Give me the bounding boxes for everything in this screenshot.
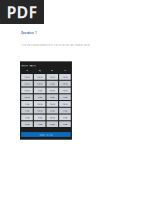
staticText: F bbox=[64, 68, 65, 72]
staticText: true bbox=[63, 123, 67, 126]
staticText: true bbox=[50, 82, 54, 85]
staticText: false bbox=[50, 102, 55, 105]
staticText: false bbox=[50, 116, 55, 119]
staticText: true bbox=[38, 123, 42, 126]
staticText: false bbox=[62, 75, 67, 78]
staticText: false bbox=[24, 82, 29, 85]
staticText: true bbox=[63, 109, 67, 112]
staticText: true bbox=[50, 123, 54, 126]
staticText: Give the Boolean expression of the follo… bbox=[21, 43, 90, 46]
staticText: true bbox=[50, 109, 54, 112]
staticText: false bbox=[50, 75, 55, 78]
staticText: Question 1 bbox=[21, 31, 37, 35]
button[interactable]: Export as CSV bbox=[21, 132, 71, 137]
staticText: P bbox=[26, 68, 27, 72]
staticText: Q bbox=[39, 68, 41, 72]
staticText: true bbox=[63, 116, 67, 119]
staticText: true bbox=[25, 109, 29, 112]
staticText: Export as CSV bbox=[39, 133, 52, 136]
staticText: false bbox=[37, 109, 42, 112]
staticText: false bbox=[37, 75, 42, 78]
staticText: true bbox=[25, 102, 29, 105]
staticText: PDF bbox=[6, 1, 37, 23]
staticText: Truth Table bbox=[21, 64, 35, 67]
staticText: true bbox=[25, 123, 29, 126]
staticText: true bbox=[25, 116, 29, 119]
staticText: false bbox=[24, 96, 29, 99]
staticText: false bbox=[37, 102, 42, 105]
staticText: true bbox=[38, 89, 42, 92]
staticText: true bbox=[50, 96, 54, 99]
staticText: true bbox=[38, 116, 42, 119]
staticText: 1. bbox=[18, 54, 20, 57]
staticText: false bbox=[24, 89, 29, 92]
staticText: true bbox=[63, 96, 67, 99]
staticText: false bbox=[50, 89, 55, 92]
staticText: false bbox=[37, 82, 42, 85]
staticText: false bbox=[24, 75, 29, 78]
staticText: false bbox=[62, 82, 67, 85]
staticText: false bbox=[62, 89, 67, 92]
staticText: R bbox=[51, 68, 53, 72]
staticText: false bbox=[62, 102, 67, 105]
staticText: true bbox=[38, 96, 42, 99]
